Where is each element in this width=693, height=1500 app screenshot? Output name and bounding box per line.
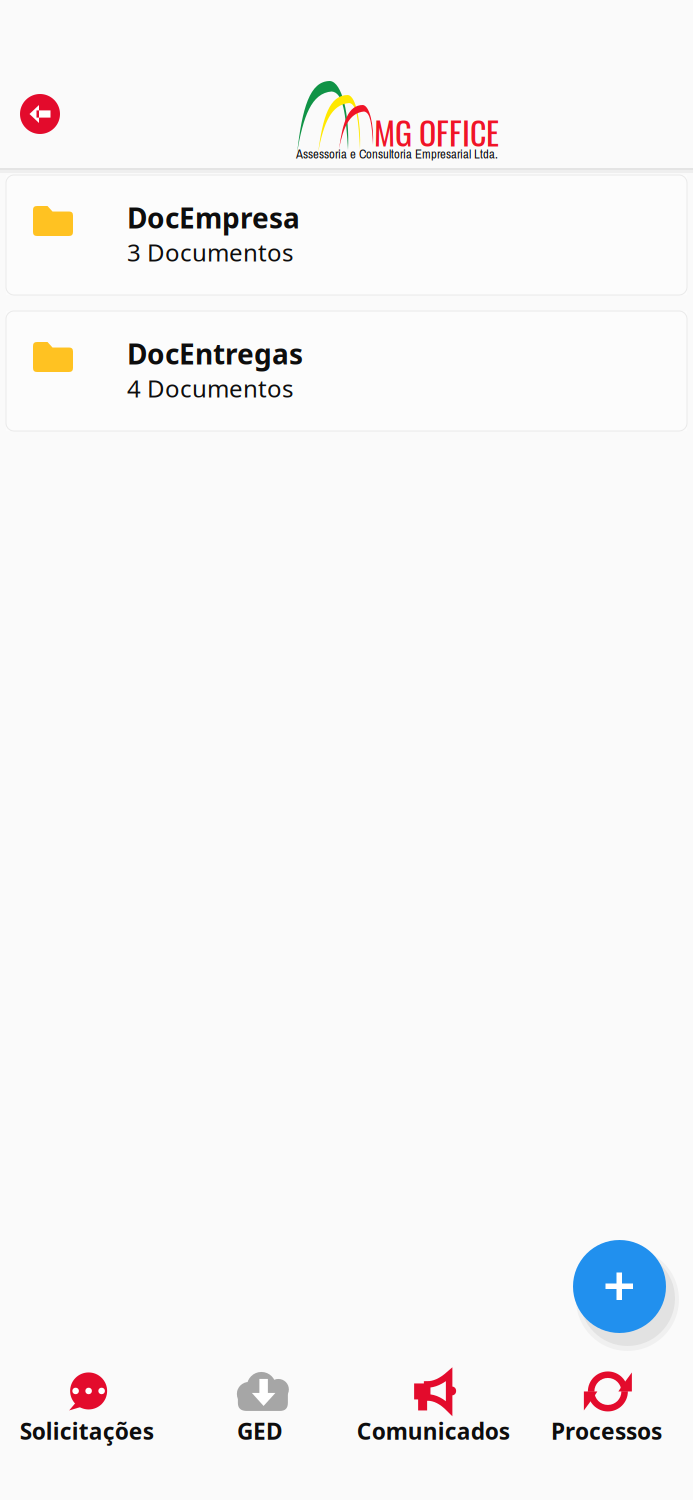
- staticText: DocEmpresa: [127, 199, 300, 236]
- button[interactable]: Processos: [520, 1370, 693, 1446]
- button[interactable]: Add: [573, 1240, 681, 1348]
- button[interactable]: Comunicados: [346, 1370, 520, 1446]
- staticText: Processos: [551, 1416, 662, 1446]
- button[interactable]: DocEmpresa: [6, 175, 687, 295]
- staticText: Assessoria e Consultoria Empresarial Ltd…: [296, 145, 498, 163]
- button[interactable]: GED: [173, 1370, 346, 1446]
- staticText: 4 Documentos: [127, 372, 293, 404]
- staticText: DocEntregas: [127, 335, 303, 372]
- staticText: MG OFFICE: [374, 108, 499, 156]
- staticText: 3 Documentos: [127, 236, 293, 268]
- staticText: GED: [237, 1416, 283, 1446]
- staticText: Solicitações: [20, 1416, 154, 1446]
- button[interactable]: DocEntregas: [6, 311, 687, 431]
- button[interactable]: Solicitações: [0, 1370, 173, 1446]
- button[interactable]: Back: [12, 86, 68, 142]
- staticText: Comunicados: [357, 1416, 510, 1446]
